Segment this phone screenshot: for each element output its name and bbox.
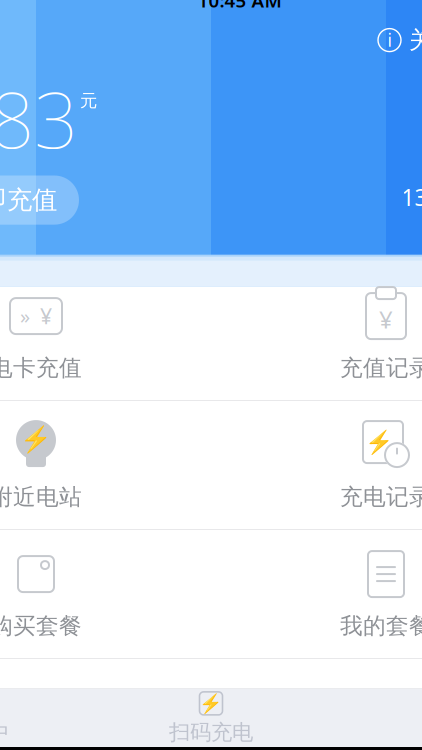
button[interactable]: 我的套餐 [211, 530, 422, 658]
staticText: 附近电站 [0, 483, 82, 511]
staticText: 充值记录 [340, 354, 422, 382]
staticText: 关于 [409, 25, 422, 55]
staticText: 我的套餐 [340, 612, 422, 640]
staticText: ¥ [40, 302, 52, 330]
button[interactable]: » [0, 272, 211, 400]
staticText: 立即充值 [0, 184, 57, 216]
button[interactable]: ¥ [0, 175, 79, 225]
staticText: 46.83 [0, 67, 78, 169]
staticText: ⚡ [20, 425, 52, 453]
staticText: 购买套餐 [0, 612, 82, 640]
button[interactable]: ¥ [211, 272, 422, 400]
button[interactable]: i [378, 21, 422, 59]
staticText: 137 [401, 182, 422, 212]
staticText: 元 [80, 90, 97, 111]
staticText: ⚡ [199, 693, 222, 714]
button[interactable]: ⚡ [94, 689, 328, 747]
staticText: ⚡ [365, 429, 393, 455]
staticText: i [387, 29, 391, 52]
staticText: 充电记录 [340, 483, 422, 511]
staticText: » [20, 303, 30, 329]
staticText: ¥ [379, 303, 393, 335]
button[interactable]: ⚡ [0, 401, 211, 529]
staticText: 10:45 AM [197, 0, 281, 13]
staticText: 电卡充值 [0, 354, 82, 382]
staticText: 扫码充电 [169, 719, 253, 746]
button[interactable]: 购买套餐 [0, 530, 211, 658]
button[interactable]: ⚡ [211, 401, 422, 529]
staticText: 充电中 [0, 719, 9, 746]
